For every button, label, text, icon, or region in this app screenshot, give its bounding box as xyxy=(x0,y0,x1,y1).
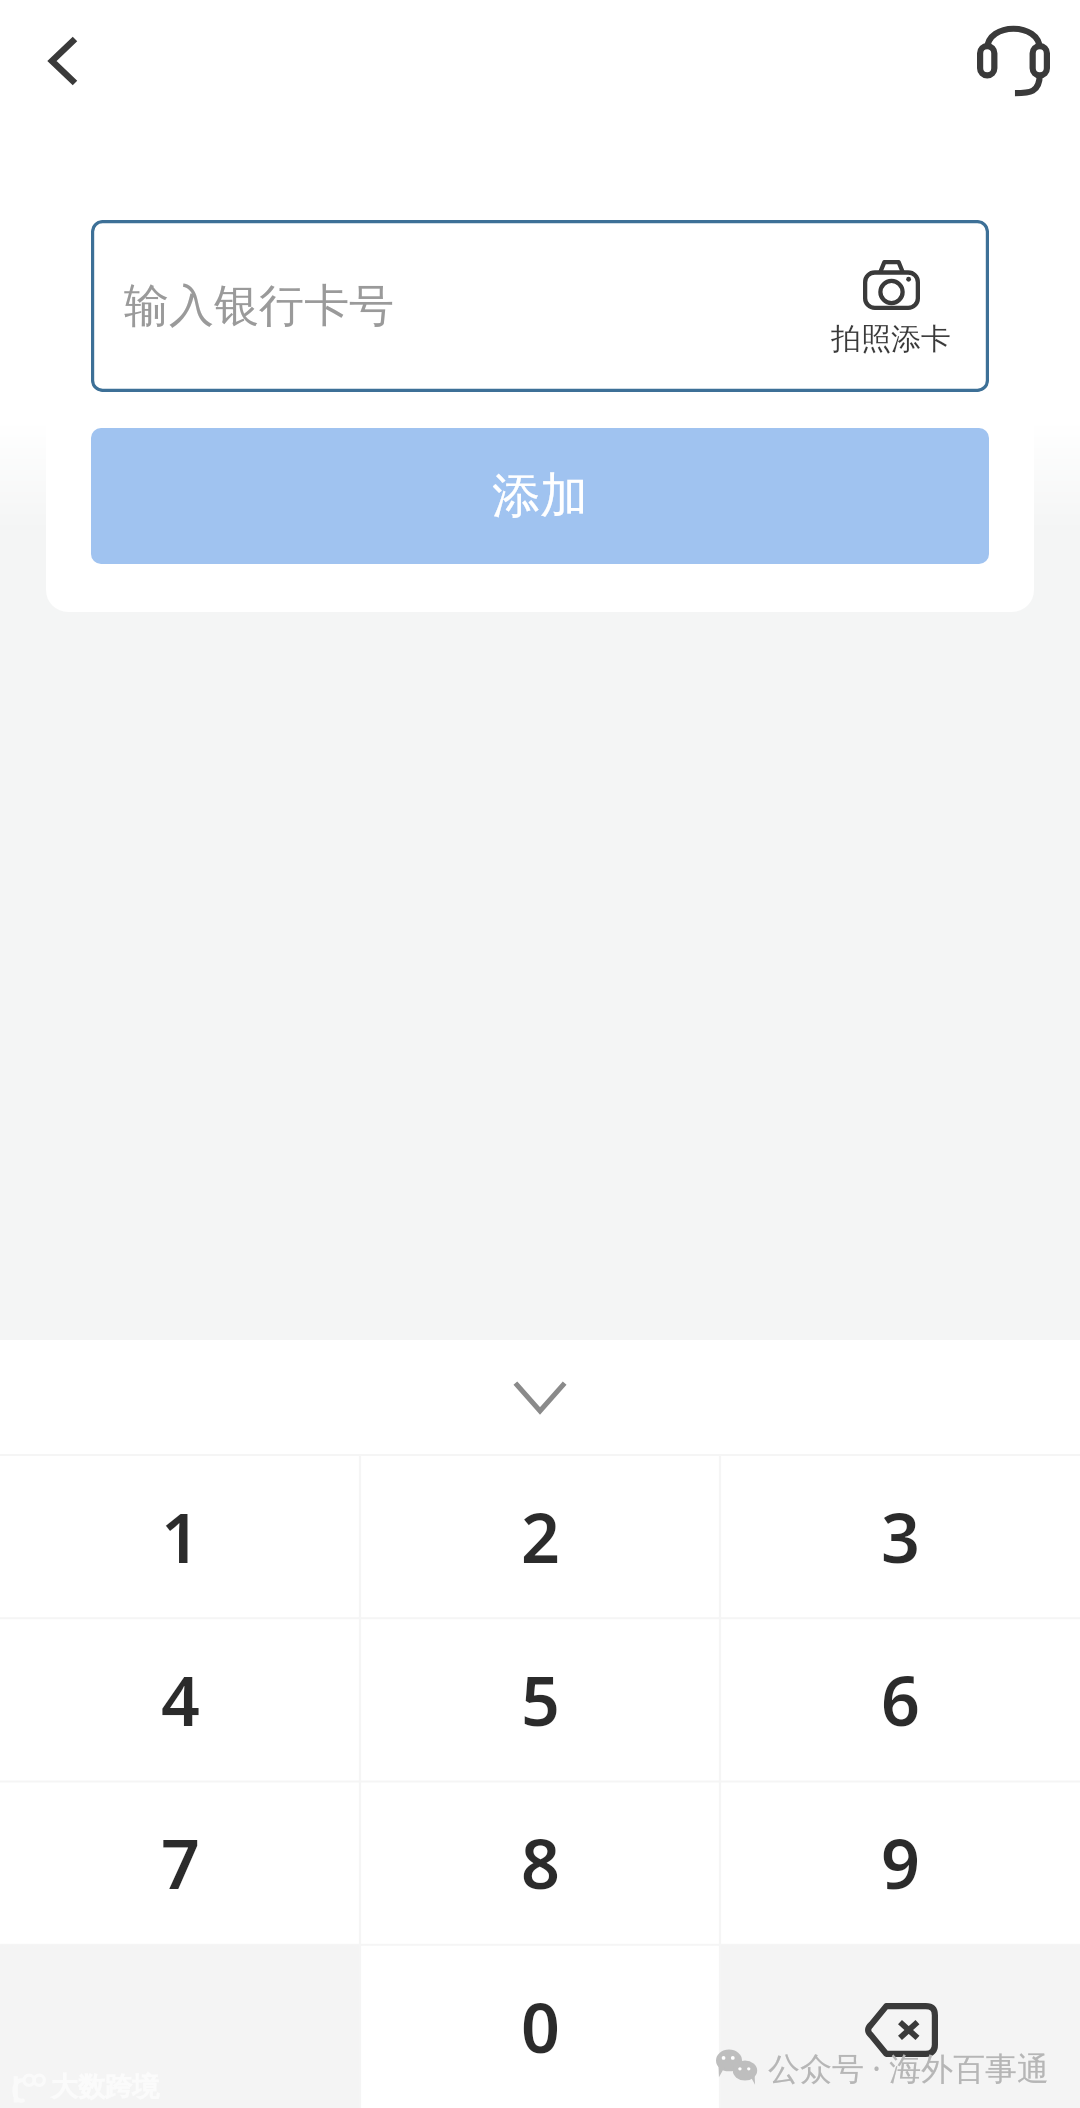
button[interactable]: 2 xyxy=(360,1455,720,1618)
button[interactable]: 5 xyxy=(360,1618,720,1781)
staticText: 5 xyxy=(521,1653,560,1746)
button[interactable]: 拍照添卡 xyxy=(831,254,989,358)
staticText: 添加 xyxy=(492,466,588,526)
button[interactable]: Back xyxy=(0,0,122,122)
button[interactable]: 4 xyxy=(0,1618,360,1781)
staticText: 公众号 · 海外百事通 xyxy=(768,2046,1050,2090)
staticText: 拍照添卡 xyxy=(831,320,951,358)
button[interactable]: 6 xyxy=(720,1618,1080,1781)
button[interactable]: 0 xyxy=(360,1944,720,2108)
button[interactable]: Hide keyboard xyxy=(495,1353,585,1443)
staticText: 4 xyxy=(161,1653,200,1746)
staticText: 7 xyxy=(161,1816,200,1909)
button[interactable]: 9 xyxy=(720,1781,1080,1944)
staticText: 大数跨境 xyxy=(51,2070,159,2104)
staticText: 8 xyxy=(521,1816,560,1909)
button[interactable]: Customer service xyxy=(958,0,1080,122)
staticText: 9 xyxy=(881,1816,920,1909)
button[interactable]: 3 xyxy=(720,1455,1080,1618)
staticText: 1 xyxy=(161,1490,200,1583)
button[interactable]: 7 xyxy=(0,1781,360,1944)
button[interactable]: 1 xyxy=(0,1455,360,1618)
staticText: 3 xyxy=(881,1490,920,1583)
button[interactable]: 添加 xyxy=(91,428,989,564)
staticText: 2 xyxy=(521,1490,560,1583)
staticText: 0 xyxy=(521,1980,560,2073)
staticText: 6 xyxy=(881,1653,920,1746)
staticText: 输入银行卡号 xyxy=(124,278,394,335)
button[interactable]: Delete xyxy=(720,1944,1080,2108)
button[interactable]: 8 xyxy=(360,1781,720,1944)
